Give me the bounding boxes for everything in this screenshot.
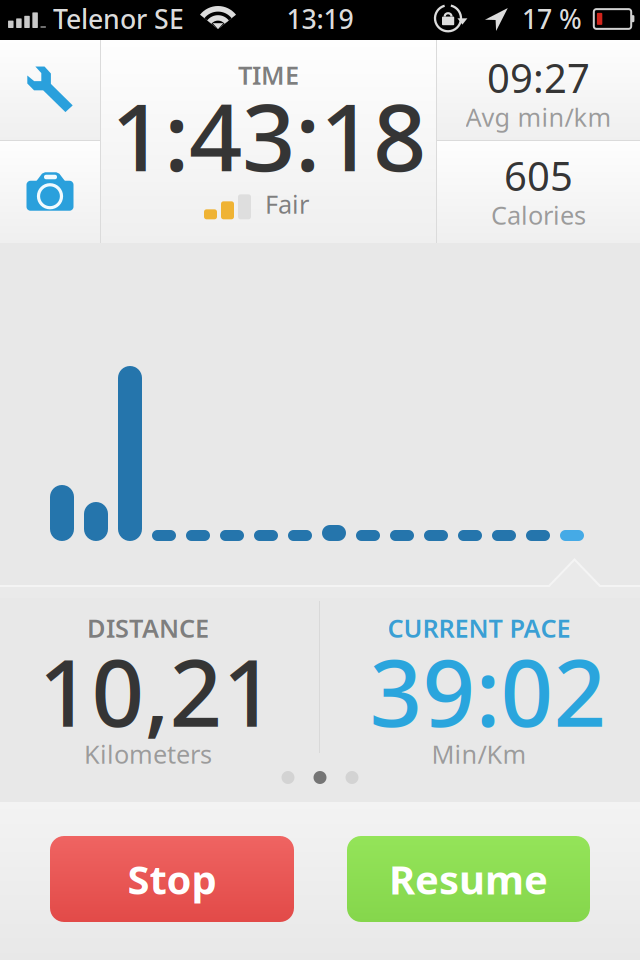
staticText: Stop	[127, 852, 216, 905]
staticText: Telenor SE	[53, 1, 184, 36]
staticText: 605	[504, 149, 573, 202]
staticText: 39:02	[369, 630, 606, 752]
staticText: Min/Km	[431, 737, 526, 771]
staticText: 1:43:18	[111, 73, 426, 197]
button[interactable]: Stop	[50, 836, 294, 922]
staticText: DISTANCE	[87, 611, 209, 645]
staticText: Kilometers	[84, 737, 212, 771]
staticText: 17 %	[522, 1, 582, 36]
button[interactable]: Camera	[0, 141, 100, 243]
staticText: Calories	[491, 198, 586, 232]
staticText: 09:27	[487, 51, 590, 104]
staticText: TIME	[238, 58, 299, 92]
staticText: Fair	[265, 187, 309, 221]
staticText: CURRENT PACE	[387, 611, 570, 645]
staticText: Avg min/km	[465, 100, 611, 134]
button[interactable]: Resume	[347, 836, 590, 922]
button[interactable]: Settings	[0, 40, 100, 140]
staticText: 13:19	[286, 1, 353, 36]
staticText: Resume	[389, 852, 548, 905]
staticText: 10,21	[38, 630, 275, 752]
